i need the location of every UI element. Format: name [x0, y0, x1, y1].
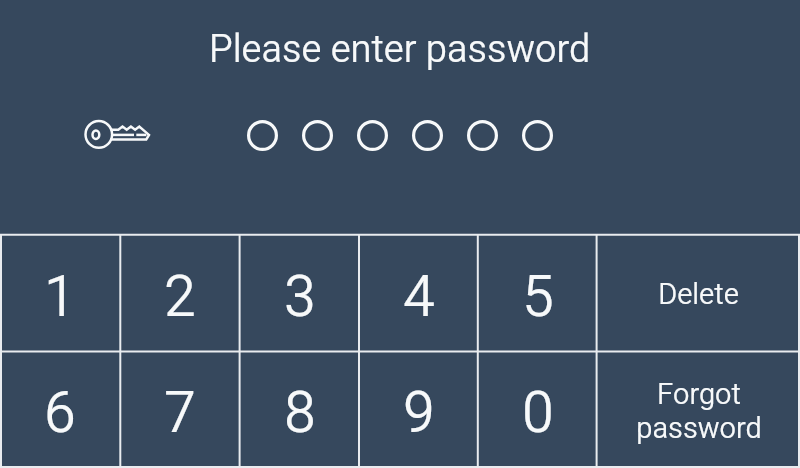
button[interactable]: 6	[0, 351, 120, 468]
staticText: 6	[44, 379, 76, 446]
button[interactable]: 2	[120, 235, 239, 352]
staticText: 2	[164, 263, 196, 330]
staticText: 8	[284, 379, 316, 446]
staticText: Please enter password	[209, 27, 591, 72]
staticText: Forgot password	[636, 377, 762, 445]
button[interactable]: 8	[240, 351, 359, 468]
staticText: Delete	[658, 277, 739, 311]
staticText: 4	[403, 263, 435, 330]
other: Key	[84, 117, 152, 152]
staticText: 1	[44, 263, 76, 330]
button[interactable]: 0	[478, 351, 597, 468]
button[interactable]: 1	[0, 235, 120, 352]
staticText: 0	[522, 379, 554, 446]
button[interactable]: 7	[120, 351, 239, 468]
button[interactable]: 9	[359, 351, 478, 468]
button[interactable]: Forgot password	[597, 351, 800, 468]
button[interactable]: 3	[240, 235, 359, 352]
staticText: 9	[403, 379, 435, 446]
button[interactable]: Delete	[597, 235, 800, 352]
staticText: 7	[164, 379, 196, 446]
staticText: 5	[522, 263, 554, 330]
button[interactable]: 4	[359, 235, 478, 352]
staticText: 3	[284, 263, 316, 330]
button[interactable]: 5	[478, 235, 597, 352]
